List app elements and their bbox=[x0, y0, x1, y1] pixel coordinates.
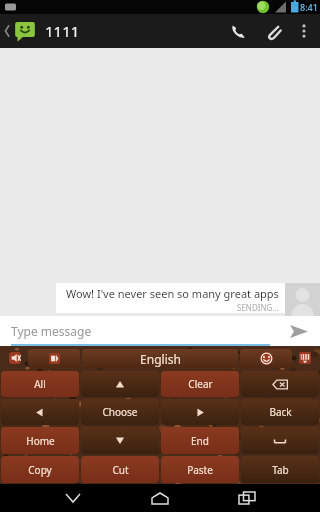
button[interactable]: RIGHT bbox=[161, 399, 239, 425]
button[interactable]: Send bbox=[278, 316, 320, 346]
button[interactable]: Clear bbox=[161, 371, 239, 397]
button[interactable]: Back bbox=[53, 484, 93, 512]
staticText: Paste bbox=[187, 463, 213, 477]
button[interactable] bbox=[240, 349, 292, 368]
button[interactable]: More options bbox=[290, 17, 318, 45]
button[interactable]: End bbox=[161, 427, 239, 454]
button[interactable]: Paste bbox=[161, 456, 239, 483]
button[interactable]: Sound toggle bbox=[2, 348, 28, 368]
staticText: End bbox=[191, 434, 209, 448]
button[interactable]: SPACE bbox=[241, 427, 319, 454]
button[interactable]: English bbox=[82, 349, 238, 368]
staticText: Wow! I've never seen so many great apps bbox=[66, 286, 279, 301]
staticText: SENDING... bbox=[237, 302, 279, 313]
staticText: Cut bbox=[112, 463, 129, 477]
button[interactable]: Recents bbox=[227, 484, 267, 512]
button[interactable]: DOWN bbox=[81, 427, 159, 454]
button[interactable]: Home bbox=[1, 427, 79, 454]
button[interactable]: Back bbox=[241, 399, 319, 425]
staticText: Tab bbox=[272, 463, 289, 477]
button[interactable] bbox=[28, 349, 80, 368]
button[interactable]: Attach bbox=[256, 14, 290, 48]
button[interactable]: Home bbox=[140, 484, 180, 512]
button[interactable]: Type message bbox=[11, 316, 270, 346]
staticText: Copy bbox=[28, 463, 52, 477]
button[interactable]: Choose bbox=[81, 399, 159, 425]
staticText: Type message bbox=[11, 323, 92, 339]
button[interactable]: Copy bbox=[1, 456, 79, 483]
button[interactable]: All bbox=[1, 371, 79, 397]
staticText: Home bbox=[26, 434, 55, 448]
button[interactable]: UP bbox=[81, 371, 159, 397]
button[interactable]: Cut bbox=[81, 456, 159, 483]
staticText: All bbox=[34, 377, 46, 391]
staticText: Back bbox=[269, 405, 292, 419]
staticText: English bbox=[140, 351, 181, 367]
button[interactable]: Tab bbox=[241, 456, 319, 483]
button[interactable]: LEFT bbox=[1, 399, 79, 425]
staticText: Clear bbox=[188, 377, 213, 391]
button[interactable]: DEL bbox=[241, 371, 319, 397]
button[interactable]: Hide keyboard bbox=[292, 348, 318, 368]
button[interactable]: Call bbox=[222, 14, 256, 48]
staticText: 1111 bbox=[45, 21, 80, 41]
staticText: Choose bbox=[102, 405, 138, 419]
button[interactable]: Conversation icon bbox=[13, 19, 37, 43]
staticText: 8:41 bbox=[300, 1, 318, 13]
